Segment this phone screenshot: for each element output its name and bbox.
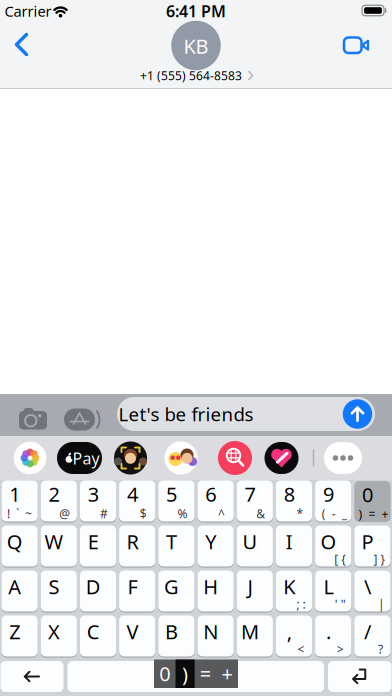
staticText: = [200, 660, 211, 687]
button[interactable]: Apple Pay [57, 442, 102, 474]
button[interactable]: V [119, 615, 155, 657]
button[interactable]: K [276, 570, 312, 612]
button[interactable]: 3 [80, 480, 116, 522]
staticText: Q [7, 528, 23, 555]
button[interactable]: J [237, 570, 273, 612]
staticText: Let's be friends [118, 402, 253, 426]
staticText: + [221, 660, 232, 687]
staticText: \ [364, 573, 371, 600]
staticText: KB [183, 33, 208, 59]
staticText: W [44, 528, 63, 555]
staticText: 0 [362, 481, 373, 508]
staticText: 9 [323, 481, 334, 507]
staticText: I [286, 528, 293, 555]
button[interactable]: O [315, 525, 351, 567]
button[interactable]: Y [197, 525, 234, 567]
button[interactable]: Memoji Stickers [114, 441, 147, 474]
button[interactable]: Q [1, 525, 38, 567]
staticText: 2 [48, 481, 59, 507]
staticText: # [100, 505, 108, 521]
staticText: L [323, 573, 333, 600]
button[interactable]: Apps [64, 407, 102, 431]
button[interactable]: 0 [354, 481, 390, 522]
button[interactable]: I [276, 525, 312, 567]
staticText: G [164, 573, 179, 600]
staticText: D [86, 573, 101, 600]
staticText: < [297, 641, 304, 657]
staticText: J [247, 573, 252, 600]
button[interactable]: Digital Touch [264, 442, 298, 474]
staticText: ( - _ [322, 505, 347, 521]
staticText: M [241, 618, 259, 645]
staticText: K [283, 573, 295, 600]
button[interactable]: Camera [17, 405, 49, 431]
staticText: , [287, 618, 292, 645]
button[interactable]: Photos [14, 442, 46, 474]
button[interactable]: 1 [1, 480, 38, 522]
staticText: @ [59, 505, 70, 521]
button[interactable]: 2 [41, 480, 77, 522]
button[interactable]: A [1, 570, 38, 612]
staticText: [ { [334, 551, 346, 567]
button[interactable]: X [41, 615, 77, 657]
button[interactable]: 6 [197, 480, 234, 522]
button[interactable]: FaceTime [344, 37, 370, 53]
button[interactable]: , [276, 615, 312, 657]
button[interactable]: 8 [276, 480, 312, 522]
button[interactable]: T [158, 525, 194, 567]
staticText: Carrier [4, 1, 51, 21]
button[interactable]: L [315, 570, 351, 612]
button[interactable]: More apps [324, 442, 362, 474]
staticText: 4 [127, 481, 138, 507]
staticText: 1 [9, 481, 20, 507]
button[interactable]: H [197, 570, 234, 612]
staticText: B [165, 618, 178, 645]
button[interactable]: Message field: Let's be friends [117, 397, 375, 431]
staticText: ' " [335, 596, 346, 612]
button[interactable]: Space [67, 661, 324, 692]
button[interactable]: Back [14, 32, 44, 57]
button[interactable]: . [315, 615, 351, 657]
button[interactable]: 5 [158, 480, 194, 522]
staticText: Y [205, 528, 216, 555]
button[interactable]: Contact +1 (555) 564-8583 [116, 20, 276, 82]
button[interactable]: P [354, 525, 390, 567]
button[interactable]: F [119, 570, 155, 612]
button[interactable]: #images [218, 441, 252, 475]
button[interactable]: 9 [315, 480, 351, 522]
button[interactable]: M [237, 615, 273, 657]
button[interactable]: 7 [237, 480, 273, 522]
button[interactable]: G [158, 570, 194, 612]
staticText: . [326, 618, 331, 645]
button[interactable]: W [41, 525, 77, 567]
staticText: A [8, 573, 21, 600]
button[interactable]: R [119, 525, 155, 567]
staticText: X [48, 618, 60, 645]
button[interactable]: / [354, 615, 390, 657]
button[interactable]: \ [354, 570, 390, 612]
button[interactable]: C [80, 615, 116, 657]
button[interactable]: Return [328, 661, 391, 692]
staticText: Pay [72, 448, 99, 469]
staticText: > [337, 641, 344, 657]
staticText: C [87, 618, 100, 645]
staticText: P [362, 528, 374, 555]
staticText: N [203, 618, 218, 645]
button[interactable]: Send [343, 399, 372, 429]
staticText: / [364, 618, 371, 645]
button[interactable]: S [41, 570, 77, 612]
button[interactable]: Stickers [164, 441, 197, 474]
button[interactable]: Z [1, 615, 38, 657]
staticText: 3 [88, 481, 99, 507]
button[interactable]: 4 [119, 480, 155, 522]
button[interactable]: E [80, 525, 116, 567]
button[interactable]: Left arrow [0, 661, 63, 692]
staticText: E [88, 528, 99, 555]
staticText: ? [378, 641, 383, 657]
button[interactable]: U [237, 525, 273, 567]
staticText: * [296, 505, 303, 521]
button[interactable]: B [158, 615, 194, 657]
button[interactable]: N [197, 615, 234, 657]
staticText: +1 (555) 564-8583 [140, 67, 242, 83]
button[interactable]: D [80, 570, 116, 612]
